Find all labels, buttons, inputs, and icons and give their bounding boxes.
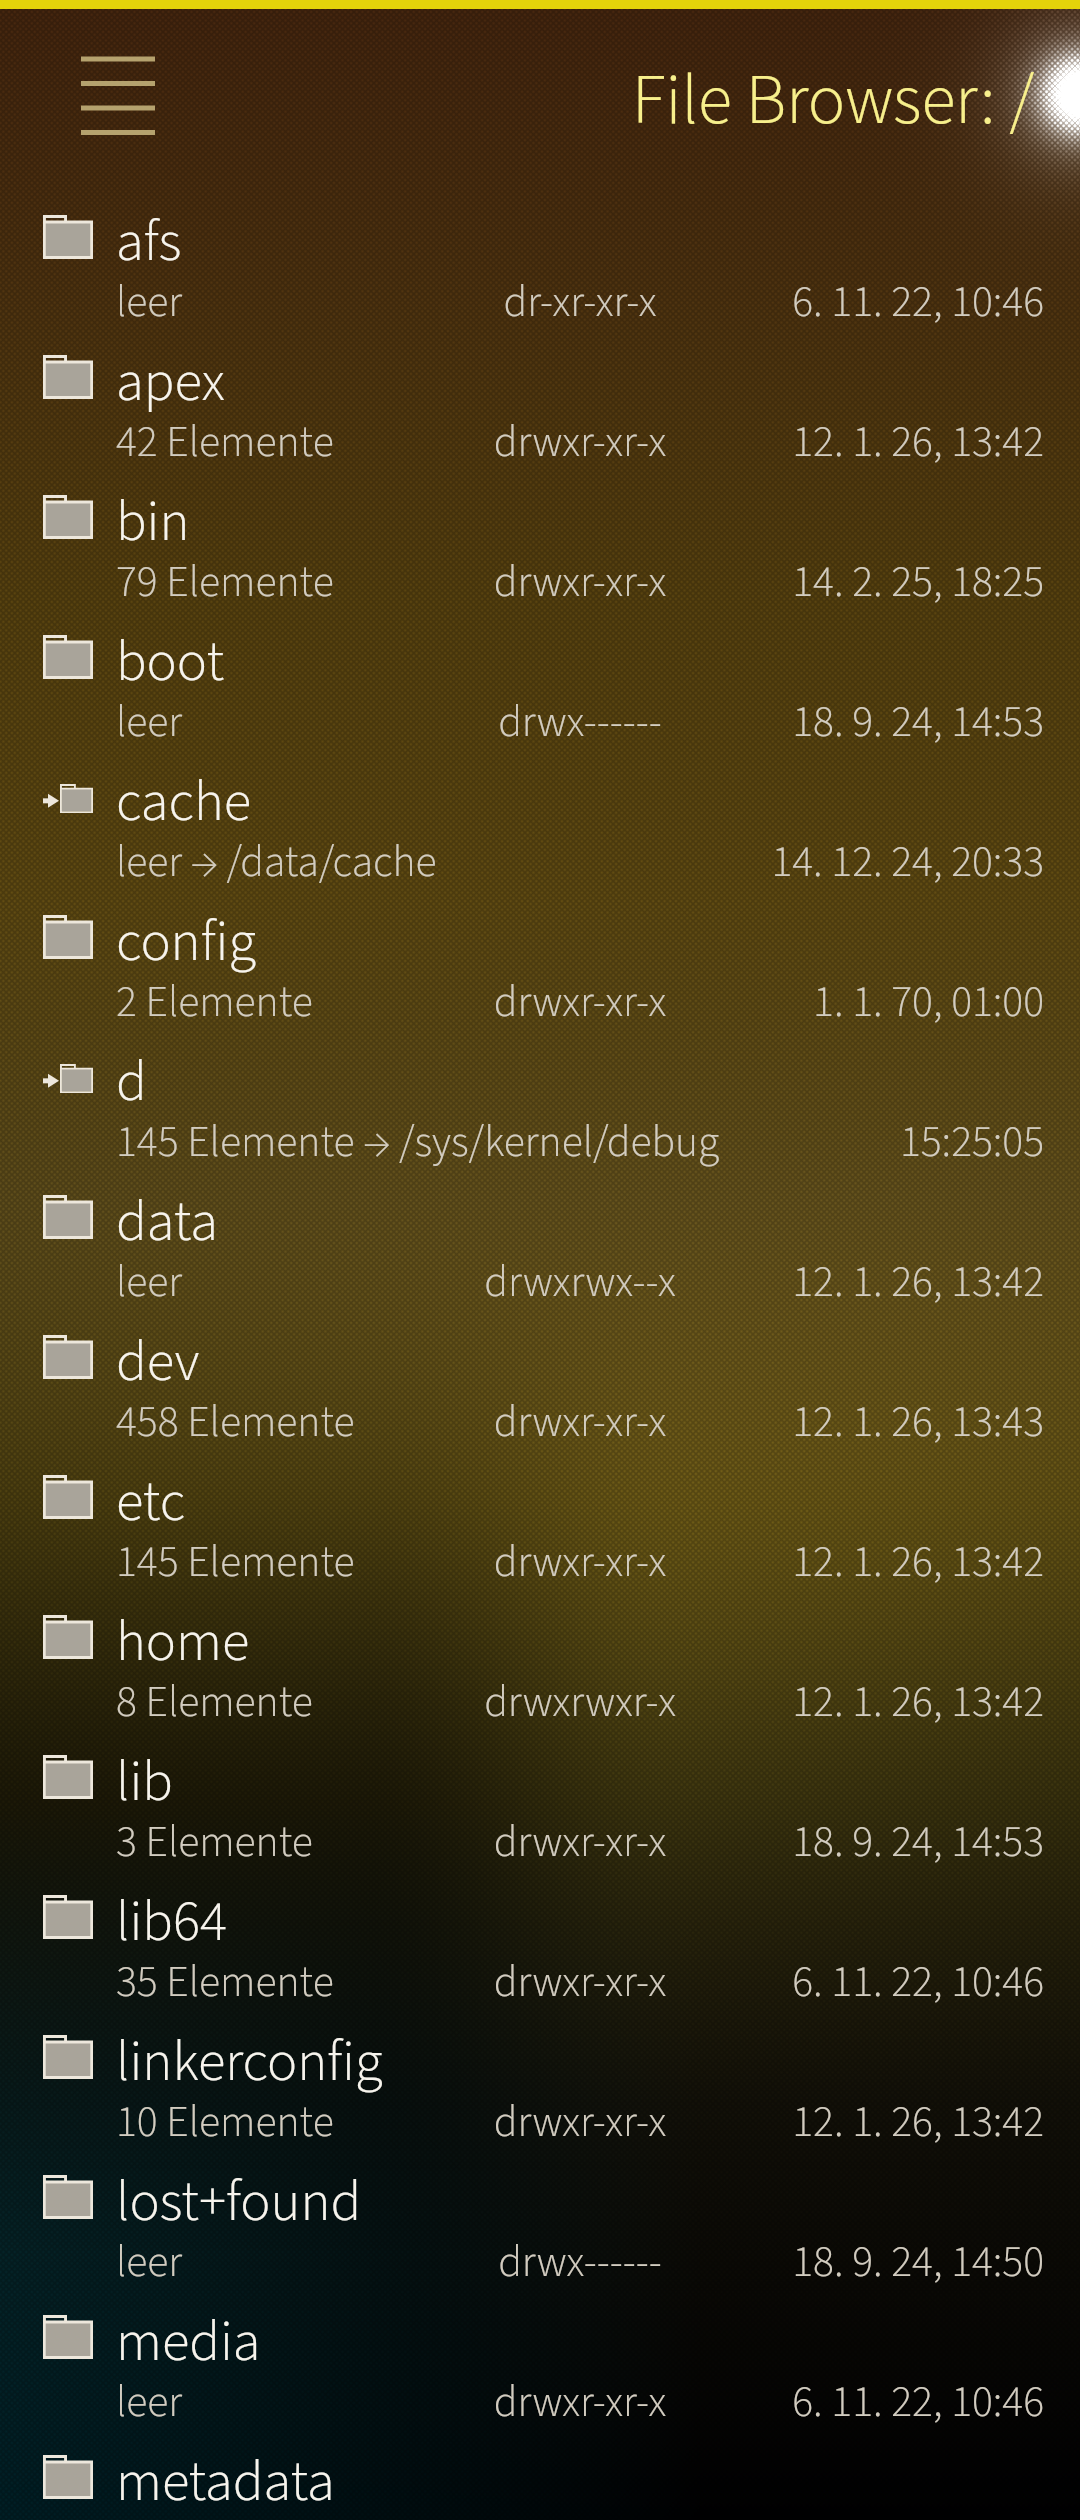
- staticText: 12. 1. 26, 13:42: [700, 411, 1044, 473]
- staticText: 458 Elemente: [116, 1391, 355, 1453]
- staticText: drwxr-xr-x: [430, 2091, 730, 2153]
- button[interactable]: config: [0, 893, 1080, 1033]
- staticText: 18. 9. 24, 14:53: [700, 1811, 1044, 1873]
- staticText: [430, 831, 730, 893]
- staticText: 35 Elemente: [116, 1951, 334, 2013]
- staticText: leer → /data/cache: [116, 831, 437, 893]
- staticText: leer: [116, 1251, 183, 1313]
- staticText: drwx------: [430, 2231, 730, 2293]
- staticText: 6. 11. 22, 10:46: [700, 2371, 1044, 2433]
- button[interactable]: bin: [0, 473, 1080, 613]
- staticText: drwxr-xr-x: [430, 411, 730, 473]
- button[interactable]: lib: [0, 1733, 1080, 1873]
- staticText: 145 Elemente: [116, 1531, 355, 1593]
- staticText: drwxr-xr-x: [430, 2371, 730, 2433]
- staticText: leer: [116, 2371, 183, 2433]
- staticText: 14. 12. 24, 20:33: [700, 831, 1044, 893]
- button[interactable]: d: [0, 1033, 1080, 1173]
- button[interactable]: afs: [0, 193, 1080, 333]
- button[interactable]: media: [0, 2293, 1080, 2433]
- button[interactable]: File Browser: /: [595, 51, 1035, 151]
- button[interactable]: lib64: [0, 1873, 1080, 2013]
- staticText: drwx------: [430, 691, 730, 753]
- staticText: 12. 1. 26, 13:43: [700, 1391, 1044, 1453]
- staticText: 2 Elemente: [116, 971, 313, 1033]
- staticText: metadata: [116, 2442, 335, 2520]
- staticText: data: [116, 1182, 218, 1262]
- staticText: 12. 1. 26, 13:42: [700, 1251, 1044, 1313]
- button[interactable]: data: [0, 1173, 1080, 1313]
- staticText: drwxrwxr-x: [430, 1671, 730, 1733]
- staticText: 12. 1. 26, 13:42: [700, 2091, 1044, 2153]
- staticText: drwxr-xr-x: [430, 971, 730, 1033]
- staticText: drwxrwx--x: [430, 1251, 730, 1313]
- staticText: leer: [116, 271, 183, 333]
- staticText: 10 Elemente: [116, 2091, 334, 2153]
- staticText: 12. 1. 26, 13:42: [700, 1531, 1044, 1593]
- button[interactable]: lost+found: [0, 2153, 1080, 2293]
- staticText: 18. 9. 24, 14:50: [700, 2231, 1044, 2293]
- button[interactable]: boot: [0, 613, 1080, 753]
- staticText: 6. 11. 22, 10:46: [700, 1951, 1044, 2013]
- staticText: cache: [116, 762, 252, 842]
- staticText: drwxr-xr-x: [430, 1391, 730, 1453]
- staticText: 3 Elemente: [116, 1811, 313, 1873]
- staticText: 8 Elemente: [116, 1671, 313, 1733]
- button[interactable]: dev: [0, 1313, 1080, 1453]
- button[interactable]: Open navigation menu: [69, 45, 167, 145]
- button[interactable]: linkerconfig: [0, 2013, 1080, 2153]
- staticText: 79 Elemente: [116, 551, 334, 613]
- staticText: 6. 11. 22, 10:46: [700, 271, 1044, 333]
- staticText: lib64: [116, 1882, 228, 1962]
- staticText: [430, 1111, 730, 1173]
- staticText: media: [116, 2302, 261, 2382]
- staticText: 42 Elemente: [116, 411, 334, 473]
- staticText: afs: [116, 202, 182, 282]
- staticText: drwxr-xr-x: [430, 1811, 730, 1873]
- button[interactable]: metadata: [0, 2433, 1080, 2520]
- staticText: 12. 1. 26, 13:42: [700, 1671, 1044, 1733]
- staticText: 18. 9. 24, 14:53: [700, 691, 1044, 753]
- button[interactable]: cache: [0, 753, 1080, 893]
- staticText: config: [116, 902, 256, 982]
- button[interactable]: home: [0, 1593, 1080, 1733]
- staticText: drwxr-xr-x: [430, 551, 730, 613]
- staticText: lib: [116, 1742, 173, 1822]
- staticText: boot: [116, 622, 225, 702]
- staticText: etc: [116, 1462, 186, 1542]
- staticText: 15:25:05: [700, 1111, 1044, 1173]
- staticText: leer: [116, 691, 183, 753]
- staticText: 1. 1. 70, 01:00: [700, 971, 1044, 1033]
- staticText: linkerconfig: [116, 2022, 383, 2102]
- staticText: bin: [116, 482, 190, 562]
- staticText: lost+found: [116, 2162, 362, 2242]
- button[interactable]: etc: [0, 1453, 1080, 1593]
- staticText: apex: [116, 342, 225, 422]
- staticText: home: [116, 1602, 250, 1682]
- staticText: dr-xr-xr-x: [430, 271, 730, 333]
- button[interactable]: apex: [0, 333, 1080, 473]
- staticText: drwxr-xr-x: [430, 1531, 730, 1593]
- staticText: d: [116, 1042, 147, 1122]
- staticText: dev: [116, 1322, 200, 1402]
- staticText: leer: [116, 2231, 183, 2293]
- staticText: [430, 2511, 730, 2520]
- staticText: drwxr-xr-x: [430, 1951, 730, 2013]
- staticText: 14. 2. 25, 18:25: [700, 551, 1044, 613]
- staticText: 145 Elemente → /sys/kernel/debug: [116, 1111, 720, 1173]
- staticText: File Browser: /: [632, 51, 1035, 151]
